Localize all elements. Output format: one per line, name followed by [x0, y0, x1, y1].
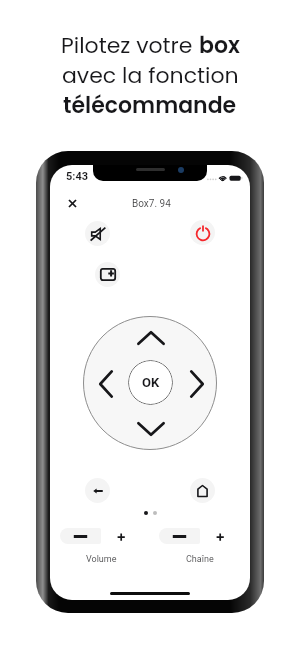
button[interactable]: Chaîne -: [159, 528, 200, 544]
button[interactable]: Droite: [180, 367, 214, 401]
staticText: Box7. 94: [132, 198, 171, 210]
staticText: OK: [142, 375, 160, 390]
button[interactable]: Volume -: [60, 528, 101, 544]
button[interactable]: Volume +: [101, 528, 142, 544]
button[interactable]: Marche / arrêt: [190, 220, 215, 245]
button[interactable]: OK: [128, 360, 173, 405]
button[interactable]: Gauche: [89, 367, 123, 401]
button[interactable]: Couper le son: [85, 221, 110, 246]
button[interactable]: Fermer: [60, 191, 84, 215]
button[interactable]: Retour: [85, 478, 110, 503]
staticText: Chaîne: [186, 554, 214, 565]
staticText: Pilotez votre: [61, 30, 199, 61]
button[interactable]: Ajouter un écran: [95, 262, 120, 287]
button[interactable]: Chaîne +: [200, 528, 241, 544]
button[interactable]: Accueil: [190, 478, 215, 503]
staticText: box: [199, 30, 240, 61]
staticText: télécommande: [63, 90, 237, 121]
staticText: Volume: [86, 554, 117, 565]
button[interactable]: Bas: [134, 412, 168, 446]
staticText: avec la fonction: [62, 60, 239, 91]
button[interactable]: Haut: [134, 321, 168, 355]
staticText: 5:43: [66, 170, 89, 183]
